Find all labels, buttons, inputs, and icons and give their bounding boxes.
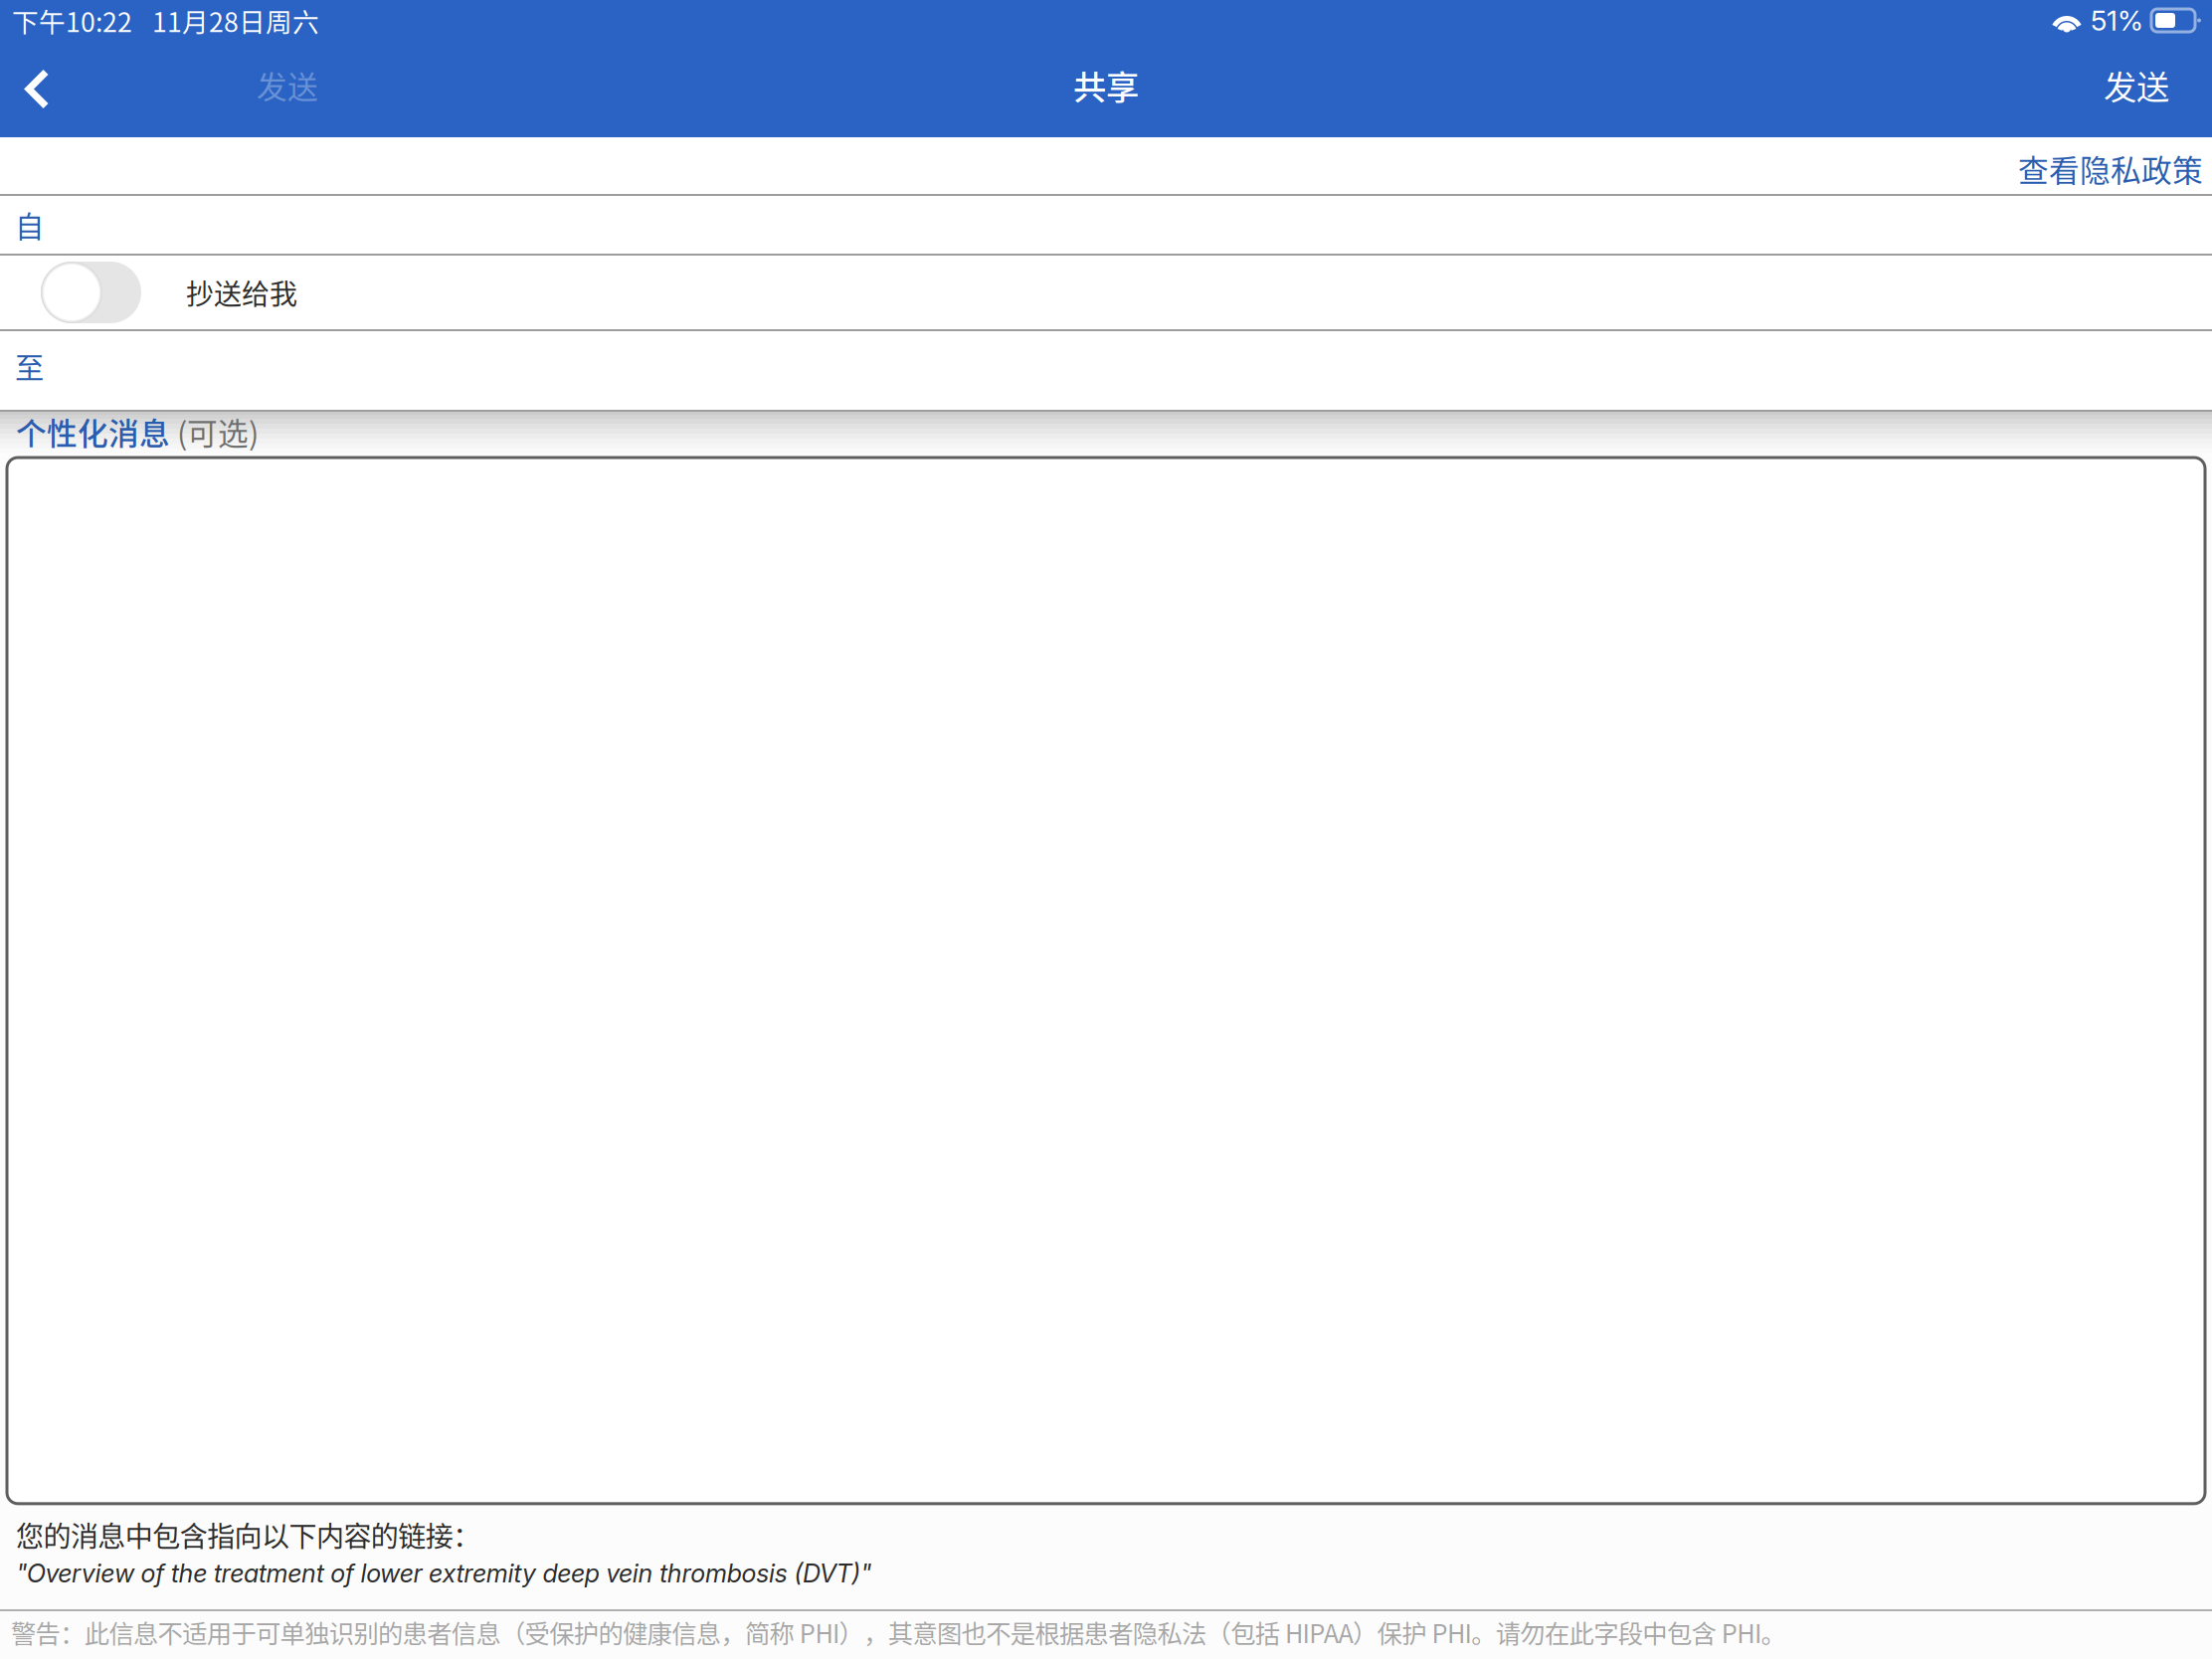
staticText: 抄送给我 bbox=[186, 272, 297, 313]
button[interactable]: 发送 bbox=[64, 41, 330, 129]
button[interactable]: 返回 bbox=[0, 41, 64, 129]
button[interactable]: 抄送给我 bbox=[0, 256, 2212, 329]
staticText: "Overview of the treatment of lower extr… bbox=[16, 1558, 871, 1588]
staticText: 发送 bbox=[257, 63, 318, 107]
staticText: 至 bbox=[15, 344, 44, 387]
staticText: 下午10:22 bbox=[12, 1, 132, 40]
staticText: 警告：此信息不适用于可单独识别的患者信息（受保护的健康信息，简称 PHI），其意… bbox=[11, 1614, 1786, 1650]
button[interactable]: 发送 bbox=[2083, 41, 2212, 129]
staticText: 您的消息中包含指向以下内容的链接： bbox=[16, 1515, 481, 1555]
staticText: 发送 bbox=[2104, 61, 2169, 109]
staticText: 共享 bbox=[1073, 61, 1139, 109]
staticText: 查看隐私政策 bbox=[2018, 147, 2203, 191]
staticText: 11月28日周六 bbox=[152, 1, 319, 40]
staticText: (可选) bbox=[170, 410, 259, 454]
staticText: 自 bbox=[15, 204, 44, 246]
button[interactable]: 查看隐私政策 bbox=[2018, 137, 2212, 194]
staticText: 个性化消息 bbox=[16, 410, 170, 454]
staticText: 51% bbox=[2091, 4, 2143, 37]
